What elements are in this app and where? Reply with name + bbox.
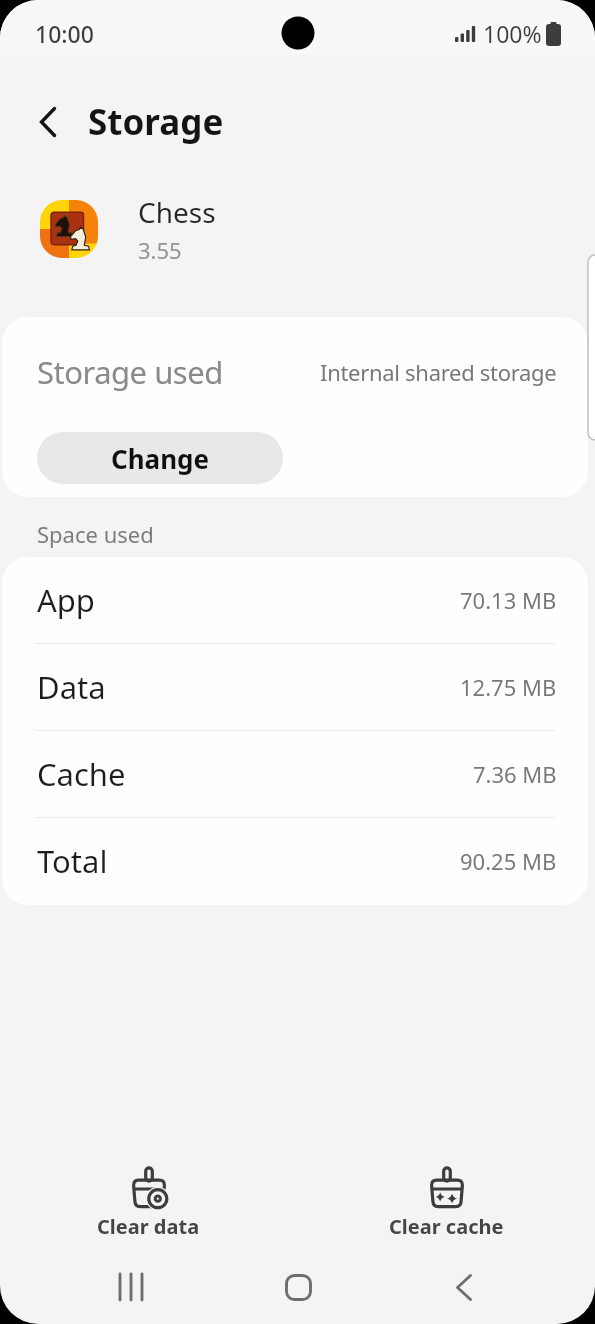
button[interactable]: Total [37,818,557,904]
staticText: 100% [483,18,542,49]
staticText: Cache [37,753,126,795]
staticText: 70.13 MB [460,585,557,615]
button[interactable]: Cache [37,731,557,817]
staticText: App [37,579,95,621]
button[interactable]: Clear cache [377,1165,516,1242]
staticText: Space used [37,519,154,549]
staticText: Data [37,666,106,708]
button[interactable] [24,98,72,146]
button[interactable] [438,1261,490,1313]
staticText: Chess [138,193,216,231]
button[interactable] [105,1261,157,1313]
button[interactable]: Change [37,432,283,484]
button[interactable]: App [37,557,557,643]
staticText: Clear data [97,1213,200,1240]
staticText: 12.75 MB [460,672,557,702]
staticText: 7.36 MB [473,759,557,789]
staticText: Clear cache [389,1213,504,1240]
staticText: Change [111,441,210,476]
staticText: 90.25 MB [460,846,557,876]
staticText: 3.55 [138,235,182,265]
button[interactable]: Clear data [85,1165,212,1242]
staticText: Storage [88,98,224,146]
staticText: 10:00 [35,18,94,49]
staticText: Storage used [37,351,223,393]
button[interactable] [272,1261,324,1313]
staticText: Internal shared storage [320,357,557,387]
staticText: Total [37,840,108,882]
button[interactable]: Data [37,644,557,730]
